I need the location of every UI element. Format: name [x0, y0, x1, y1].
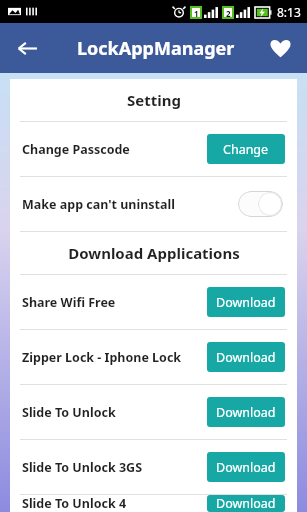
button[interactable]: Make app can't uninstall toggle [238, 191, 283, 217]
staticText: 2 [226, 8, 231, 17]
staticText: Make app can't uninstall [22, 196, 175, 213]
staticText: Slide To Unlock 3GS [22, 459, 143, 476]
staticText: 8:13 [277, 4, 301, 20]
button[interactable]: Download [207, 397, 285, 427]
button[interactable]: Slide To Unlock 4 [10, 495, 297, 512]
staticText: Change [223, 141, 269, 158]
staticText: Download Applications [68, 243, 240, 263]
staticText: Setting [127, 90, 181, 110]
button[interactable]: Download [207, 452, 285, 482]
button[interactable]: Download [207, 342, 285, 372]
staticText: Slide To Unlock [22, 404, 116, 421]
button[interactable]: Slide To Unlock 3GS [10, 440, 297, 494]
staticText: LockAppManager [77, 36, 235, 61]
staticText: Slide To Unlock 4 [22, 495, 127, 512]
button[interactable]: Favorite [259, 27, 301, 69]
staticText: Share Wifi Free [22, 294, 116, 311]
staticText: Download [216, 404, 276, 421]
button[interactable]: Change [207, 134, 285, 164]
staticText: Zipper Lock - Iphone Lock [22, 349, 182, 366]
button[interactable]: Back [6, 27, 48, 69]
button[interactable]: Change Passcode [10, 122, 297, 176]
staticText: Download [216, 294, 276, 311]
button[interactable]: Make app can't uninstall [10, 177, 297, 231]
staticText: Download [216, 349, 276, 366]
button[interactable]: Download [207, 495, 285, 512]
staticText: Download [216, 459, 276, 476]
button[interactable]: Slide To Unlock [10, 385, 297, 439]
staticText: Change Passcode [22, 141, 130, 158]
button[interactable]: Zipper Lock - Iphone Lock [10, 330, 297, 384]
button[interactable]: Download [207, 287, 285, 317]
button[interactable]: Share Wifi Free [10, 275, 297, 329]
staticText: 1 [194, 8, 199, 17]
staticText: Download [216, 495, 276, 512]
